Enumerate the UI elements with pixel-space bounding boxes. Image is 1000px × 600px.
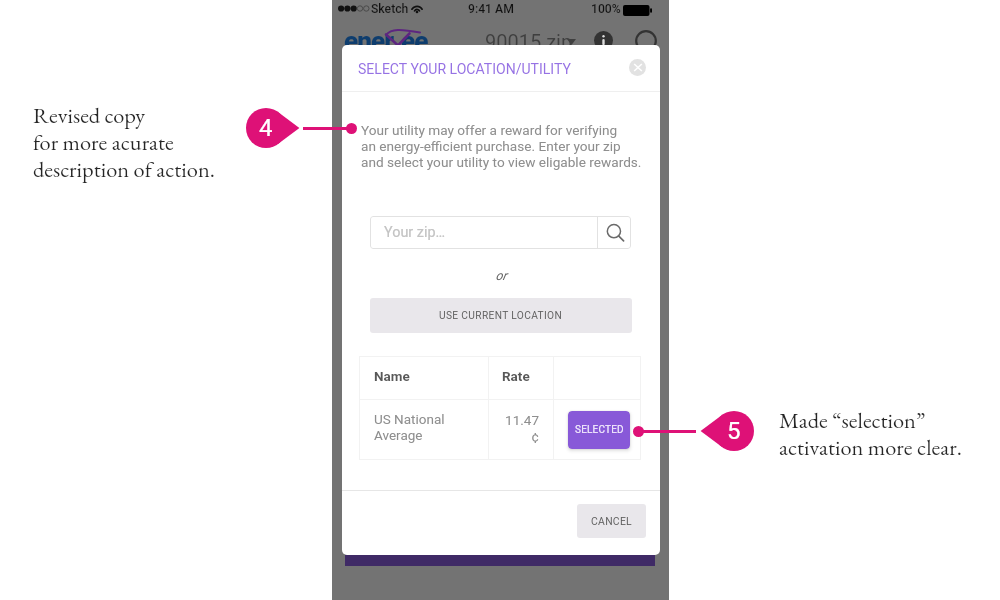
staticText: Your zip… bbox=[384, 224, 446, 241]
staticText: SELECTED bbox=[575, 424, 624, 436]
staticText: US National Average bbox=[374, 411, 445, 444]
staticText: 11.47 ¢ bbox=[479, 412, 539, 445]
button[interactable]: CANCEL bbox=[577, 504, 646, 538]
staticText: USE CURRENT LOCATION bbox=[439, 310, 563, 322]
staticText: 4 bbox=[259, 114, 273, 142]
staticText: 5 bbox=[727, 417, 741, 445]
staticText: ener bbox=[344, 26, 394, 56]
staticText: SELECT YOUR LOCATION/UTILITY bbox=[358, 61, 571, 77]
button[interactable]: USE CURRENT LOCATION bbox=[370, 298, 632, 333]
staticText: 9:41 AM bbox=[468, 2, 514, 16]
staticText: Revised copy for more acurate descriptio… bbox=[33, 100, 215, 183]
staticText: Name bbox=[374, 368, 410, 384]
button[interactable]: Your zip… bbox=[370, 216, 631, 249]
staticText: CANCEL bbox=[591, 515, 633, 527]
staticText: Sketch bbox=[371, 2, 409, 16]
staticText: Rate bbox=[502, 368, 530, 384]
staticText: 90015 zip bbox=[485, 30, 573, 53]
staticText: Made “selection” activation more clear. bbox=[779, 405, 962, 461]
staticText: 100% bbox=[591, 2, 621, 16]
staticText: Your utility may offer a reward for veri… bbox=[361, 122, 642, 170]
button[interactable]: Close dialog bbox=[629, 59, 646, 76]
button[interactable]: SELECTED bbox=[568, 411, 630, 449]
button[interactable]: Search bbox=[635, 30, 657, 52]
staticText: or bbox=[342, 268, 660, 283]
button[interactable]: Info bbox=[594, 31, 613, 50]
staticText: ee bbox=[401, 26, 428, 56]
